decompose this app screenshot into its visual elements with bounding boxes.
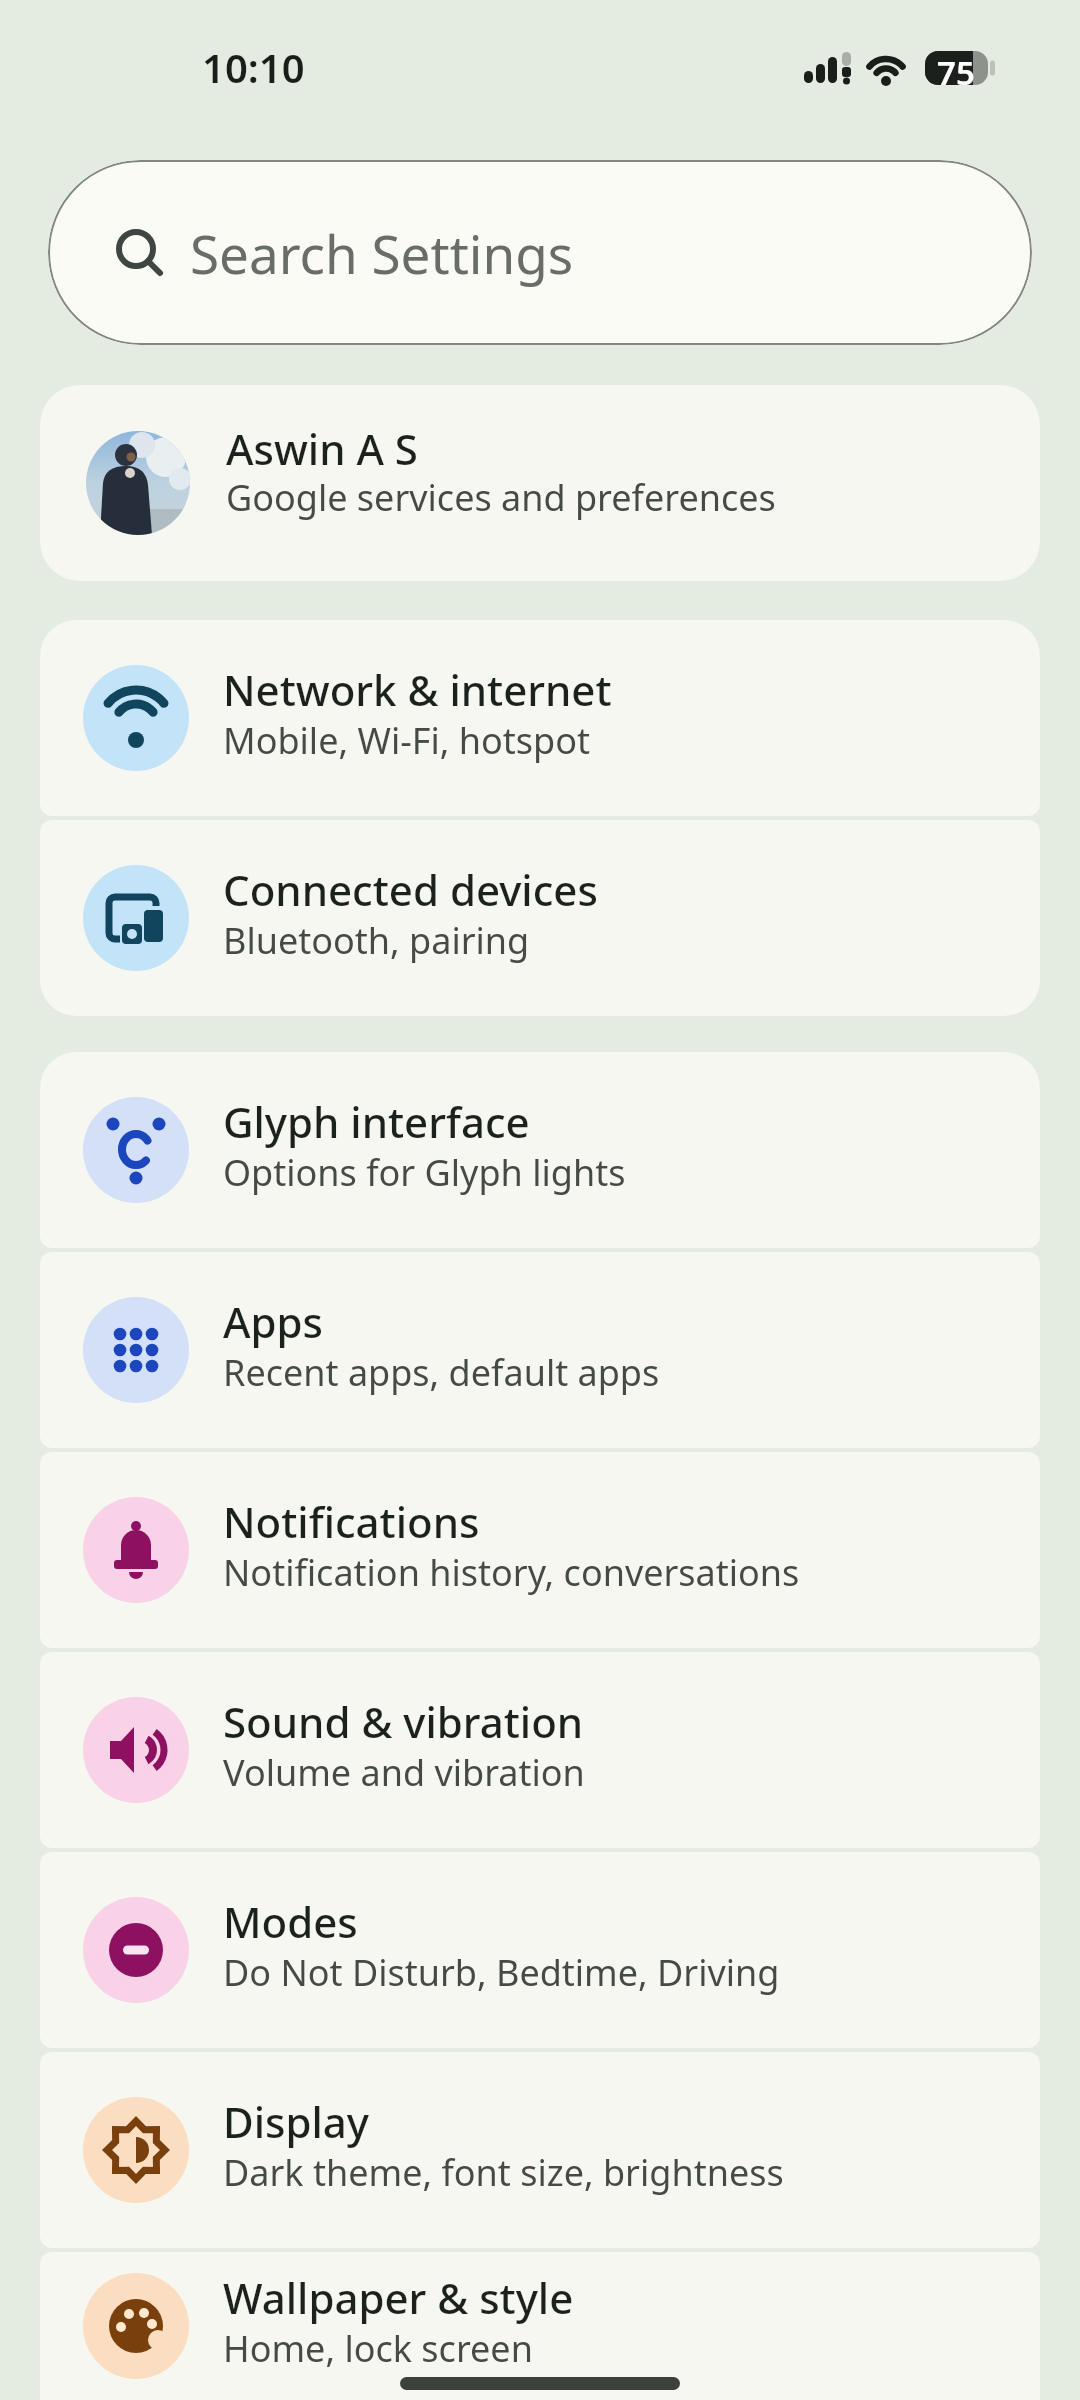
staticText: Wallpaper & style bbox=[223, 2269, 574, 2326]
staticText: Notifications bbox=[223, 1493, 480, 1550]
staticText: Do Not Disturb, Bedtime, Driving bbox=[223, 1948, 780, 1997]
staticText: Modes bbox=[223, 1893, 358, 1950]
staticText: Network & internet bbox=[223, 661, 612, 718]
button[interactable]: Sound & vibration bbox=[40, 1652, 1040, 1848]
staticText: Connected devices bbox=[223, 861, 598, 918]
staticText: Sound & vibration bbox=[223, 1693, 584, 1750]
button[interactable]: Wallpaper & style bbox=[40, 2252, 1040, 2400]
button[interactable]: Glyph interface bbox=[40, 1052, 1040, 1248]
staticText: Volume and vibration bbox=[223, 1748, 585, 1797]
staticText: Notification history, conversations bbox=[223, 1548, 800, 1597]
staticText: Mobile, Wi-Fi, hotspot bbox=[223, 716, 590, 765]
staticText: Aswin A S bbox=[226, 420, 418, 477]
button[interactable]: Aswin A S bbox=[40, 385, 1040, 581]
staticText: 10:10 bbox=[202, 40, 305, 94]
button[interactable]: Connected devices bbox=[40, 820, 1040, 1016]
staticText: Display bbox=[223, 2093, 370, 2150]
staticText: 75 bbox=[937, 50, 975, 95]
button[interactable]: Notifications bbox=[40, 1452, 1040, 1648]
staticText: Recent apps, default apps bbox=[223, 1348, 660, 1397]
button[interactable]: Network & internet bbox=[40, 620, 1040, 816]
staticText: Dark theme, font size, brightness bbox=[223, 2148, 784, 2197]
button[interactable]: Search Settings bbox=[48, 160, 1032, 345]
staticText: Glyph interface bbox=[223, 1093, 530, 1150]
button[interactable]: Display bbox=[40, 2052, 1040, 2248]
staticText: Search Settings bbox=[190, 217, 574, 289]
staticText: Home, lock screen bbox=[223, 2324, 533, 2373]
staticText: Apps bbox=[223, 1293, 324, 1350]
staticText: Options for Glyph lights bbox=[223, 1148, 626, 1197]
staticText: Bluetooth, pairing bbox=[223, 916, 530, 965]
staticText: Google services and preferences bbox=[226, 473, 776, 522]
button[interactable]: Modes bbox=[40, 1852, 1040, 2048]
button[interactable]: Apps bbox=[40, 1252, 1040, 1448]
